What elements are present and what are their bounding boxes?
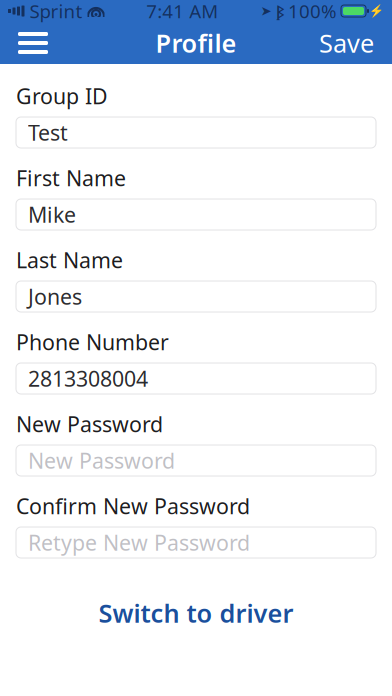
staticText: Retype New Password [28,528,250,557]
staticText: Test [28,118,68,147]
button[interactable]: Test [16,117,376,148]
staticText: 2813308004 [28,364,148,393]
staticText: Mike [28,200,76,229]
button[interactable]: Mike [16,199,376,230]
staticText: Phone Number [16,328,169,356]
staticText: Last Name [16,246,123,274]
button[interactable]: Menu [8,23,58,63]
staticText: Profile [155,26,236,60]
staticText: New Password [28,446,175,475]
button[interactable]: Jones [16,281,376,312]
button[interactable]: 2813308004 [16,363,376,394]
button[interactable]: Save [309,18,384,68]
staticText: ➤ [260,3,271,18]
staticText: 7:41 AM [146,0,218,23]
staticText: Confirm New Password [16,492,250,520]
staticText: 100% [288,0,337,23]
staticText: ᛒ [276,1,284,21]
staticText: Group ID [16,82,108,110]
button[interactable]: Retype New Password [16,527,376,558]
staticText: Switch to driver [98,596,293,630]
staticText: Jones [28,282,82,311]
staticText: Sprint [29,0,82,23]
staticText: New Password [16,410,163,438]
staticText: First Name [16,164,126,192]
staticText: ⚡ [369,4,384,18]
staticText: Save [319,26,374,60]
button[interactable]: New Password [16,445,376,476]
button[interactable]: Switch to driver [78,586,313,640]
